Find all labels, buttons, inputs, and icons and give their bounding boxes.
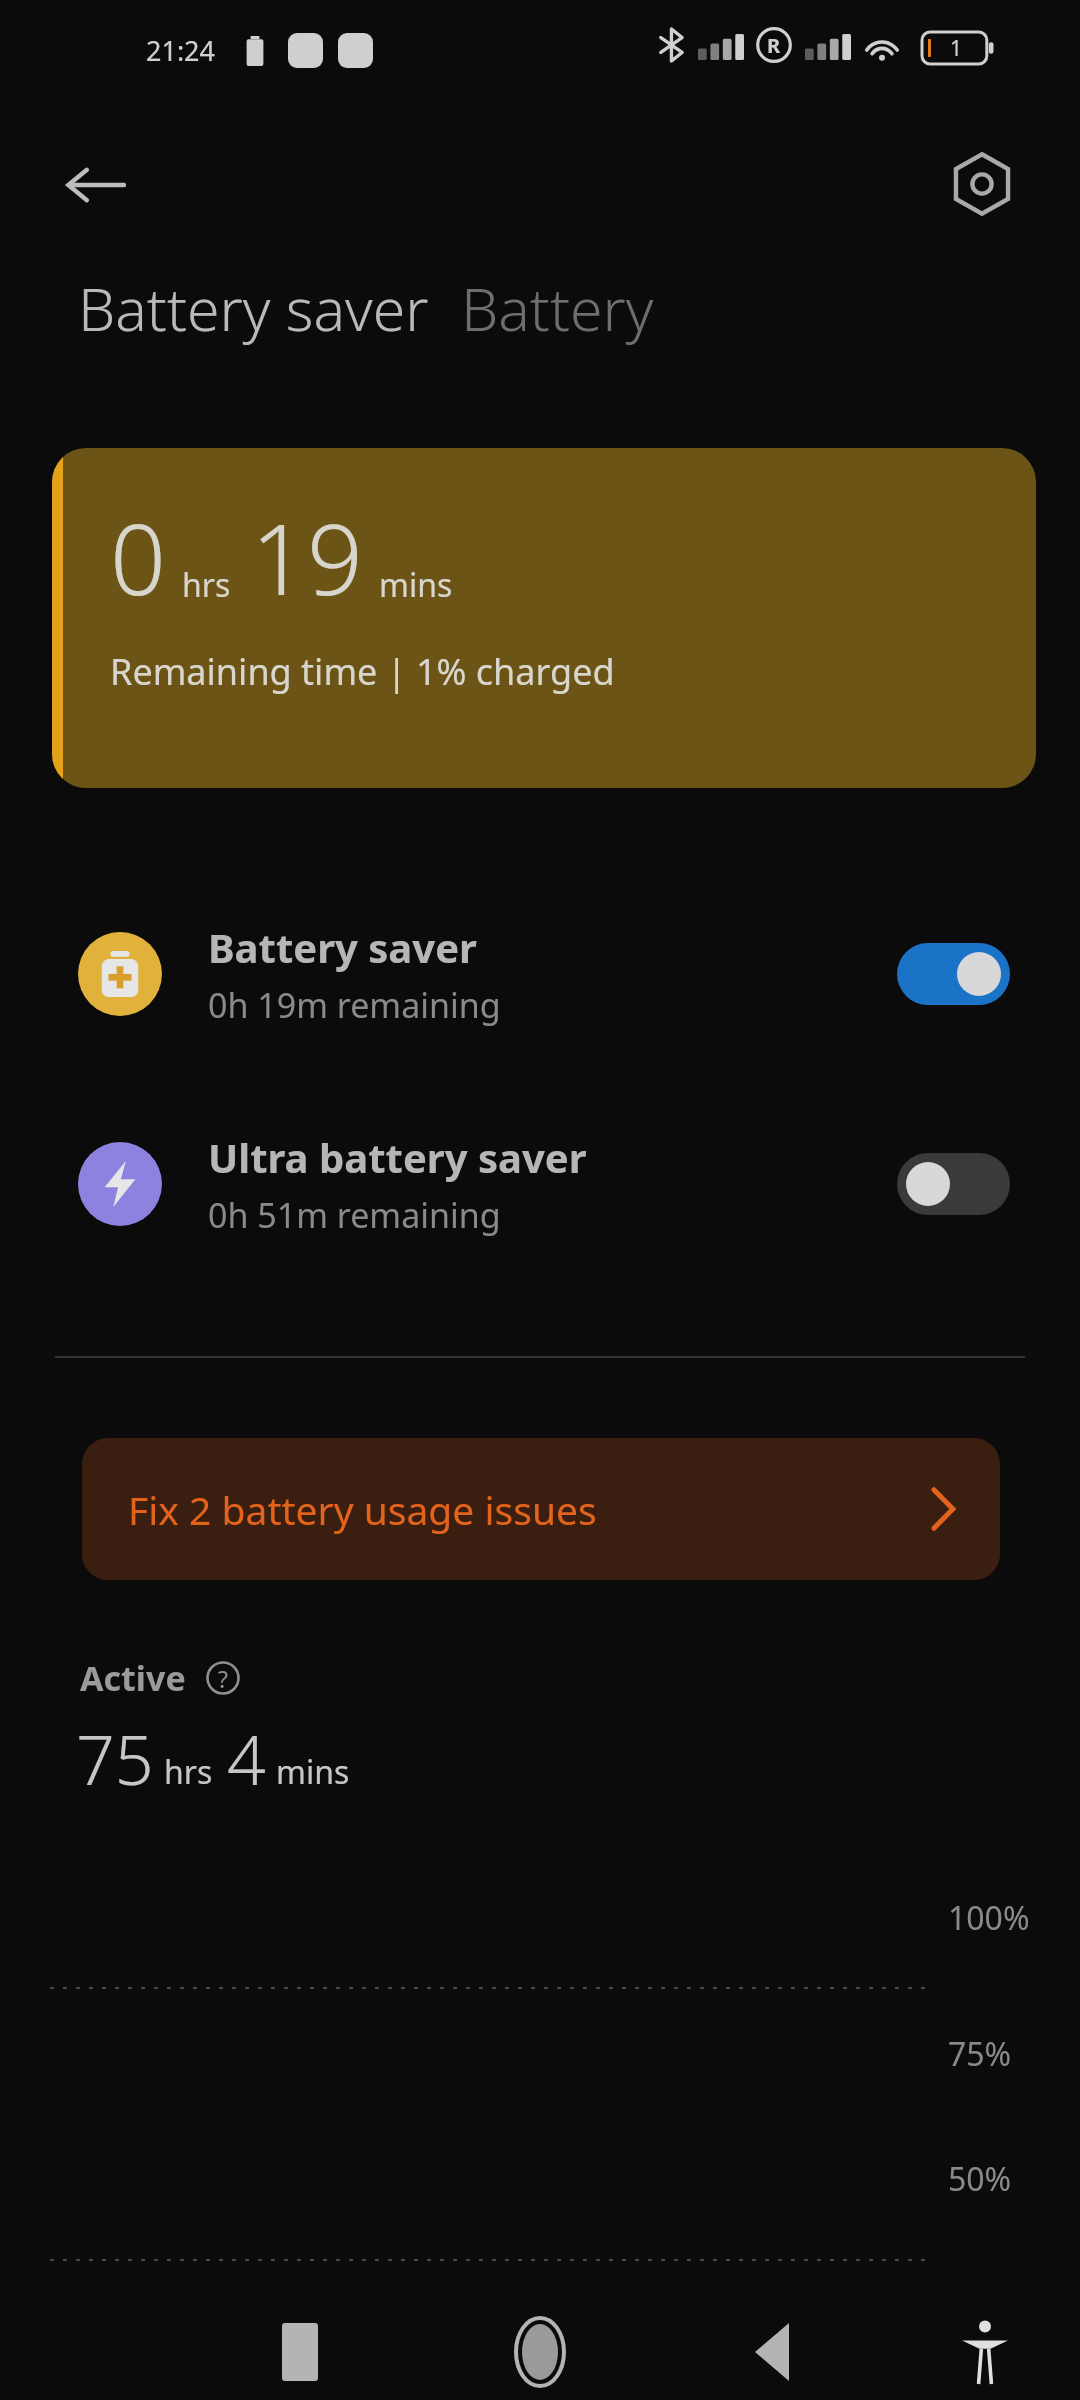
staticText: 21:24 xyxy=(146,32,216,69)
button[interactable]: Fix 2 battery usage issues xyxy=(82,1438,1000,1580)
button[interactable]: Accessibility xyxy=(930,2304,1040,2400)
button[interactable]: Battery xyxy=(461,268,654,348)
staticText: 1 xyxy=(950,34,963,63)
button[interactable]: Ultra battery saver off xyxy=(897,1153,1010,1215)
staticText: Battery saver xyxy=(78,268,429,348)
staticText: mins xyxy=(276,1750,350,1794)
button[interactable]: 0 xyxy=(52,448,1036,788)
staticText: hrs xyxy=(164,1750,213,1794)
staticText: 100% xyxy=(948,1896,1030,1940)
button[interactable]: Back xyxy=(38,128,152,242)
staticText: 75% xyxy=(948,2032,1012,2076)
button[interactable]: Home xyxy=(480,2304,600,2400)
staticText: Ultra battery saver xyxy=(208,1130,587,1184)
staticText: 4 xyxy=(227,1712,266,1805)
button[interactable]: Battery saver xyxy=(78,268,429,348)
staticText: mins xyxy=(379,563,453,607)
staticText: hrs xyxy=(182,563,231,607)
staticText: 75 xyxy=(76,1712,154,1805)
button[interactable]: Battery saver on xyxy=(897,943,1010,1005)
staticText: Active xyxy=(80,1655,186,1701)
staticText: R xyxy=(767,32,781,59)
staticText: Remaining time | 1% charged xyxy=(110,647,615,696)
button[interactable]: Ultra battery saver xyxy=(52,1118,1036,1250)
staticText: Fix 2 battery usage issues xyxy=(128,1483,597,1536)
staticText: 19 xyxy=(251,490,363,623)
button[interactable]: Settings xyxy=(924,126,1040,242)
staticText: 0h 19m remaining xyxy=(208,982,501,1028)
button[interactable]: Back xyxy=(712,2304,832,2400)
button[interactable]: Help about active time xyxy=(202,1657,244,1699)
staticText: Battery saver xyxy=(208,920,477,974)
staticText: ? xyxy=(218,1663,228,1694)
staticText: 0 xyxy=(110,490,166,623)
button[interactable]: Battery saver xyxy=(52,908,1036,1040)
staticText: 50% xyxy=(948,2157,1012,2201)
staticText: Battery xyxy=(461,268,654,348)
button[interactable]: Recents xyxy=(240,2304,360,2400)
staticText: 0h 51m remaining xyxy=(208,1192,501,1238)
